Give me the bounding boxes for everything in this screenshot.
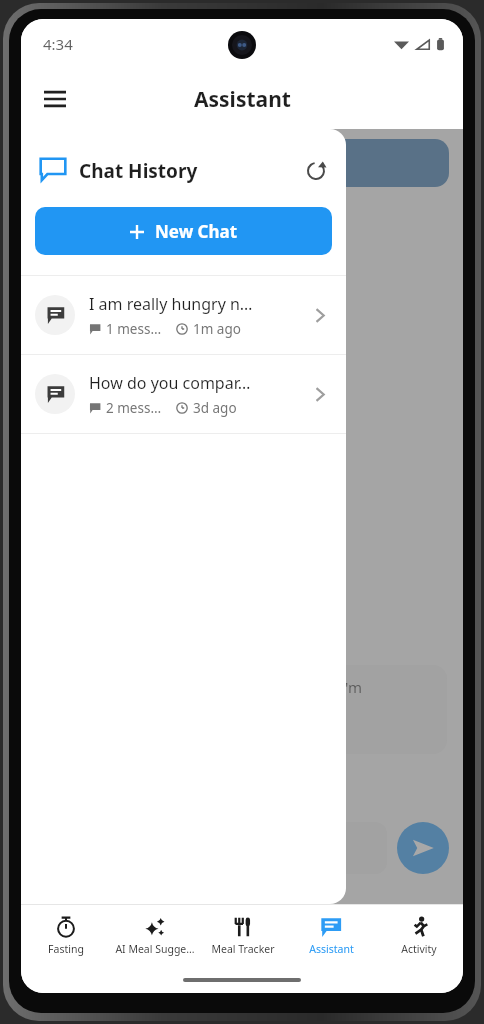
staticText: 3d ago: [193, 399, 237, 417]
button[interactable]: Send message: [397, 822, 449, 874]
staticText: I am really hungry n…: [89, 293, 253, 315]
button[interactable]: I am really hungry n…: [21, 276, 346, 354]
button[interactable]: AI Meal Sugge…: [110, 905, 199, 967]
staticText: 1 mess…: [106, 320, 162, 338]
button[interactable]: Refresh chat history: [296, 151, 336, 191]
button[interactable]: How do you compar…: [21, 355, 346, 433]
button[interactable]: Open navigation menu: [33, 77, 77, 121]
staticText: AI Meal Sugge…: [115, 942, 195, 956]
staticText: Assistant: [309, 942, 354, 956]
staticText: 2 mess…: [106, 399, 162, 417]
staticText: Assistant: [194, 85, 291, 114]
button[interactable]: New Chat: [35, 207, 332, 255]
staticText: Chat History: [79, 158, 296, 184]
staticText: 1m ago: [193, 320, 241, 338]
staticText: Meal Tracker: [211, 942, 275, 956]
staticText: How do you compar…: [89, 372, 251, 394]
staticText: Fasting: [48, 942, 84, 956]
staticText: Activity: [401, 942, 437, 956]
staticText: anything specific? I'm thinking honey an…: [211, 677, 362, 742]
button[interactable]: Meal Tracker: [199, 905, 287, 967]
button[interactable]: Assistant: [287, 905, 375, 967]
staticText: 4:34: [43, 34, 73, 54]
staticText: New Chat: [155, 220, 238, 243]
button[interactable]: Activity: [375, 905, 463, 967]
button[interactable]: [187, 822, 387, 874]
button[interactable]: Fasting: [21, 905, 110, 967]
